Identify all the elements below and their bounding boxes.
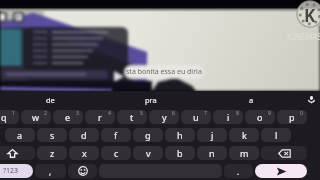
staticText: g	[145, 129, 151, 141]
button[interactable]: f	[101, 128, 131, 142]
button[interactable]: Backspace	[261, 146, 307, 160]
button[interactable]: y	[149, 110, 179, 124]
staticText: 3	[76, 110, 79, 117]
staticText: u	[193, 111, 199, 123]
button[interactable]: q	[0, 110, 19, 124]
button[interactable]: u	[181, 110, 211, 124]
button[interactable]: ,	[35, 164, 66, 178]
staticText: n	[209, 147, 215, 159]
staticText: c	[114, 147, 119, 159]
button[interactable]: m	[229, 146, 259, 160]
button[interactable]: ?123	[0, 164, 33, 178]
button[interactable]: z	[37, 146, 67, 160]
staticText: K	[304, 4, 316, 27]
button[interactable]: x	[69, 146, 99, 160]
staticText: .	[237, 166, 240, 177]
button[interactable]: g	[133, 128, 163, 142]
staticText: v	[146, 147, 151, 159]
button[interactable]: p	[277, 110, 307, 124]
button[interactable]: r	[85, 110, 115, 124]
button[interactable]: n	[197, 146, 227, 160]
button[interactable]: j	[197, 128, 227, 142]
button[interactable]: b	[165, 146, 195, 160]
staticText: KINEMASTER	[287, 31, 320, 42]
staticText: k	[242, 129, 247, 141]
staticText: l	[275, 129, 278, 141]
button[interactable]: .	[224, 164, 253, 178]
staticText: 8	[236, 110, 239, 117]
button[interactable]: c	[101, 146, 131, 160]
staticText: 1	[12, 110, 15, 117]
button[interactable]: h	[165, 128, 195, 142]
staticText: 0	[300, 110, 303, 117]
staticText: ,	[49, 166, 52, 177]
staticText: w	[32, 111, 40, 123]
staticText: j	[211, 129, 214, 141]
button[interactable]: de	[0, 91, 100, 108]
staticText: a	[17, 129, 23, 141]
button[interactable]: Send	[255, 164, 307, 178]
staticText: r	[98, 111, 102, 123]
staticText: h	[177, 129, 183, 141]
button[interactable]: o	[245, 110, 275, 124]
staticText: e	[65, 111, 71, 123]
staticText: 7	[204, 110, 207, 117]
staticText: sta bonita essa eu diria	[126, 67, 202, 77]
staticText: y	[162, 111, 167, 123]
button[interactable]: a	[5, 128, 35, 142]
staticText: z	[50, 147, 55, 159]
button[interactable]: k	[229, 128, 259, 142]
staticText: i	[227, 111, 230, 123]
staticText: q	[1, 111, 7, 123]
button[interactable]: v	[133, 146, 163, 160]
staticText: pra	[145, 95, 157, 105]
button[interactable]: w	[21, 110, 51, 124]
button[interactable]: a	[201, 91, 302, 108]
staticText: f	[114, 129, 118, 141]
staticText: b	[177, 147, 183, 159]
button[interactable]: Emoji	[68, 164, 97, 178]
staticText: d	[81, 129, 87, 141]
staticText: t	[130, 111, 134, 123]
button[interactable]: pra	[100, 91, 201, 108]
button[interactable]: l	[261, 128, 291, 142]
staticText: a	[249, 95, 254, 105]
staticText: p	[289, 111, 295, 123]
button[interactable]: s	[37, 128, 67, 142]
staticText: 5	[140, 110, 143, 117]
staticText: m	[240, 147, 249, 159]
staticText: 2	[44, 110, 47, 117]
staticText: ?123	[3, 166, 19, 176]
button[interactable]: e	[53, 110, 83, 124]
staticText: de	[46, 95, 55, 105]
staticText: 6	[172, 110, 175, 117]
staticText: s	[50, 129, 55, 141]
staticText: x	[82, 147, 87, 159]
staticText: o	[257, 111, 263, 123]
button[interactable]: Voice input	[302, 91, 320, 108]
button[interactable]: d	[69, 128, 99, 142]
staticText: 9	[268, 110, 271, 117]
staticText: 4	[108, 110, 111, 117]
button[interactable]: i	[213, 110, 243, 124]
button[interactable]: Shift	[0, 146, 35, 160]
button[interactable]: t	[117, 110, 147, 124]
